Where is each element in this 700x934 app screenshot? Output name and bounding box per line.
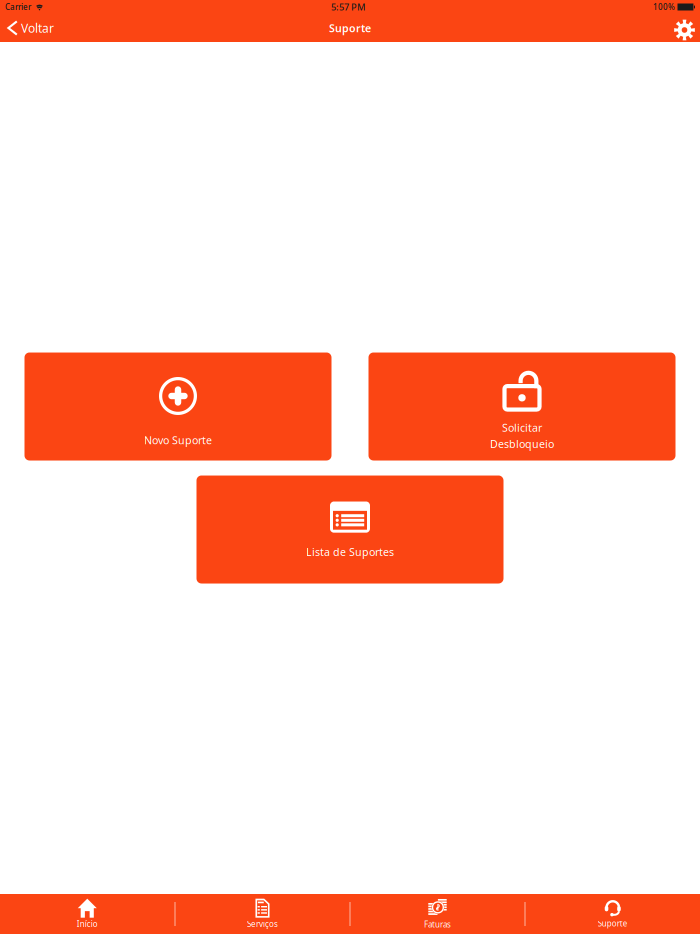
button[interactable]: Novo Suporte [24,352,331,460]
staticText: 100% [653,2,675,12]
staticText: Suporte [598,918,628,929]
button[interactable]: Settings [671,14,698,42]
staticText: Voltar [21,20,54,36]
button[interactable]: Início [0,894,174,934]
staticText: Desbloqueio [490,437,554,451]
staticText: Serviços [247,919,278,929]
staticText: Início [77,919,98,929]
staticText: Novo Suporte [144,433,212,447]
button[interactable]: Faturas [350,894,524,934]
button[interactable]: Suporte [525,894,700,934]
staticText: Carrier [5,2,31,12]
staticText: Suporte [329,21,371,35]
button[interactable]: Serviços [175,894,349,934]
button[interactable]: Voltar [2,14,58,42]
staticText: 5:57 PM [331,1,366,13]
button[interactable]: Lista de Suportes [196,475,503,583]
staticText: Faturas [424,919,451,930]
button[interactable]: Solicitar [368,352,675,460]
staticText: Solicitar [502,421,542,435]
staticText: Lista de Suportes [306,545,394,559]
